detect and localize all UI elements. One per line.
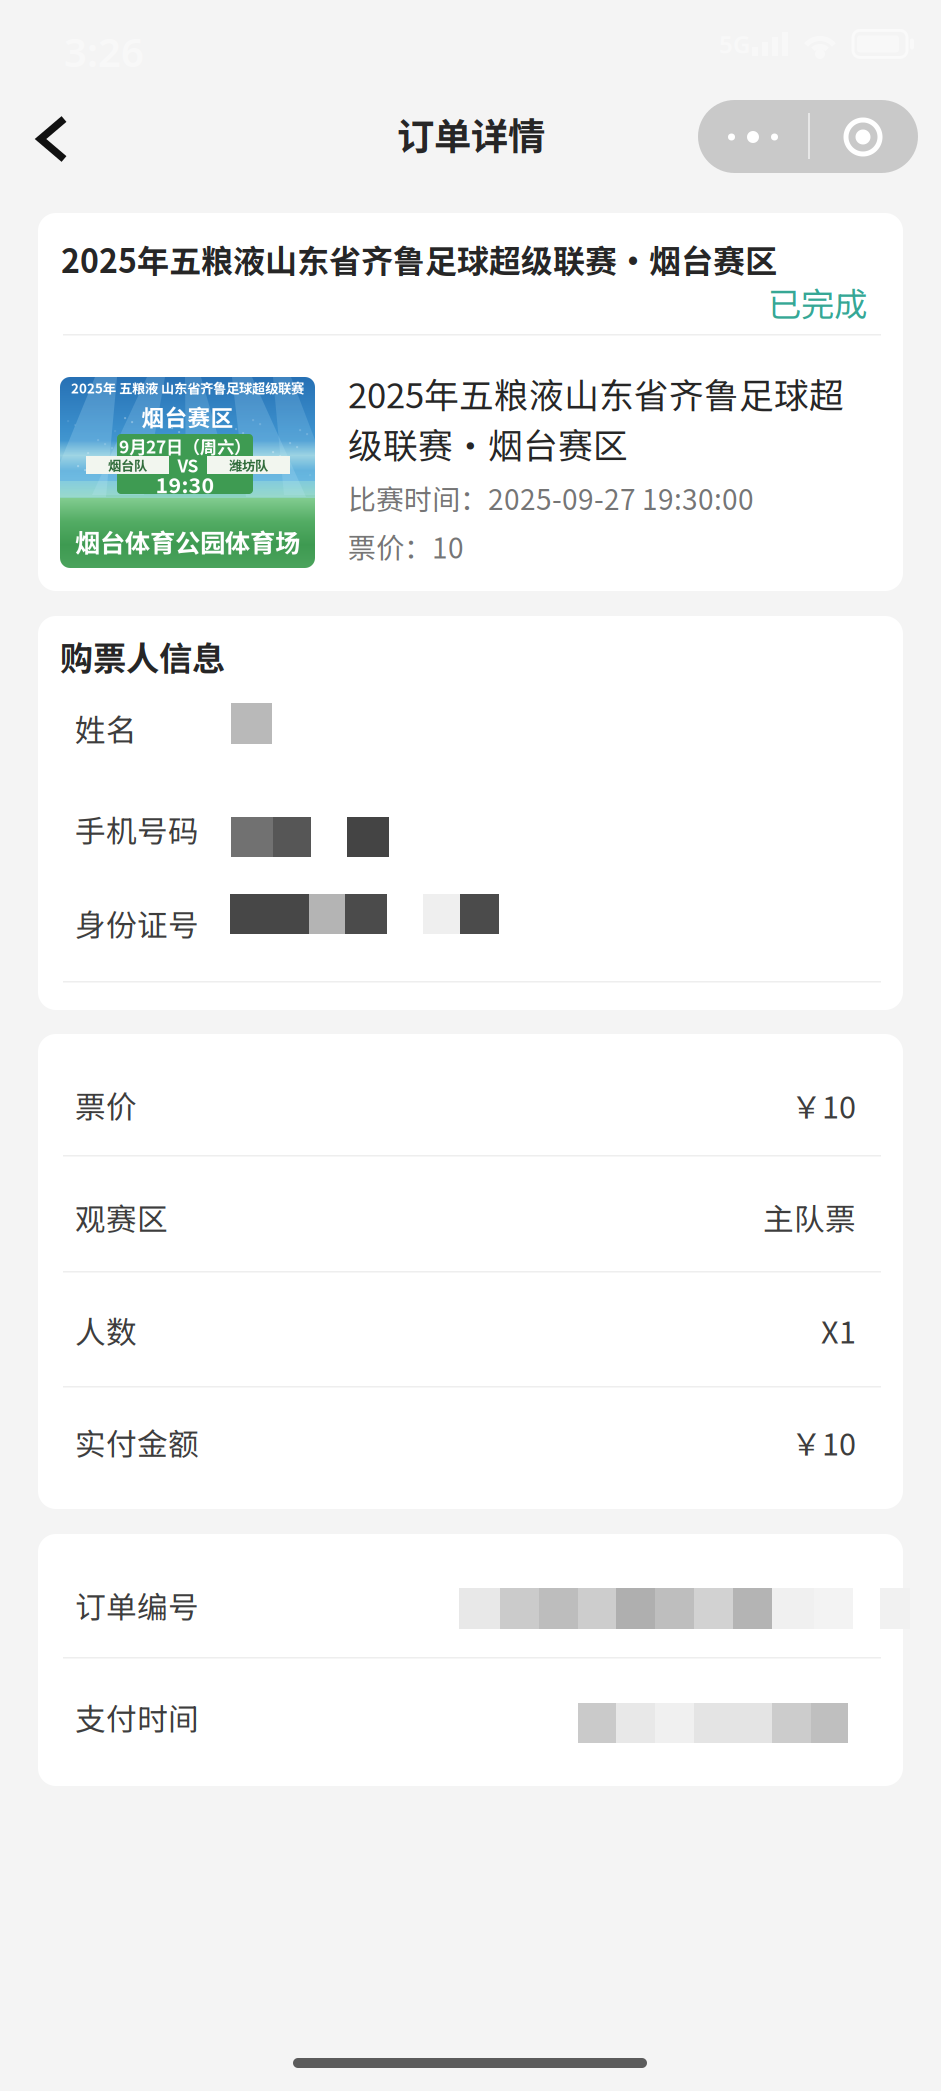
staticText: 9月27日（周六） xyxy=(119,433,251,459)
staticText: ￥10 xyxy=(791,1083,856,1127)
staticText: 票价 xyxy=(75,1083,137,1127)
staticText: 订单详情 xyxy=(397,107,545,161)
staticText: 主队票 xyxy=(763,1195,856,1239)
staticText: 实付金额 xyxy=(75,1420,199,1464)
staticText: 身份证号 xyxy=(75,901,199,945)
staticText: 手机号码 xyxy=(75,807,199,851)
staticText: 姓名 xyxy=(75,706,137,750)
staticText: 订单编号 xyxy=(75,1583,199,1627)
staticText: 潍坊队 xyxy=(229,455,268,475)
staticText: 2025年 五粮液 山东省齐鲁足球超级联赛 xyxy=(71,378,304,397)
staticText: 烟台队 xyxy=(108,455,147,475)
staticText: 比赛时间：2025-09-27 19:30:00 xyxy=(348,477,754,518)
staticText: 19:30 xyxy=(155,469,214,499)
staticText: X1 xyxy=(821,1308,856,1352)
staticText: 观赛区 xyxy=(75,1195,168,1239)
button[interactable]: 返回 xyxy=(21,101,83,177)
staticText: 烟台体育公园体育场 xyxy=(75,523,300,560)
staticText: 支付时间 xyxy=(75,1695,199,1739)
staticText: ￥10 xyxy=(791,1420,856,1464)
staticText: VS xyxy=(177,452,198,478)
staticText: 烟台赛区 xyxy=(141,400,233,433)
staticText: 2025年五粮液山东省齐鲁足球超级联赛·烟台赛区 xyxy=(61,236,777,282)
staticText: 2025年五粮液山东省齐鲁足球超级联赛·烟台赛区 xyxy=(348,368,844,468)
staticText: 已完成 xyxy=(768,278,867,326)
staticText: 购票人信息 xyxy=(60,632,225,680)
staticText: 人数 xyxy=(75,1308,137,1352)
button[interactable]: 更多 xyxy=(698,100,918,173)
staticText: 票价：10 xyxy=(348,526,464,566)
